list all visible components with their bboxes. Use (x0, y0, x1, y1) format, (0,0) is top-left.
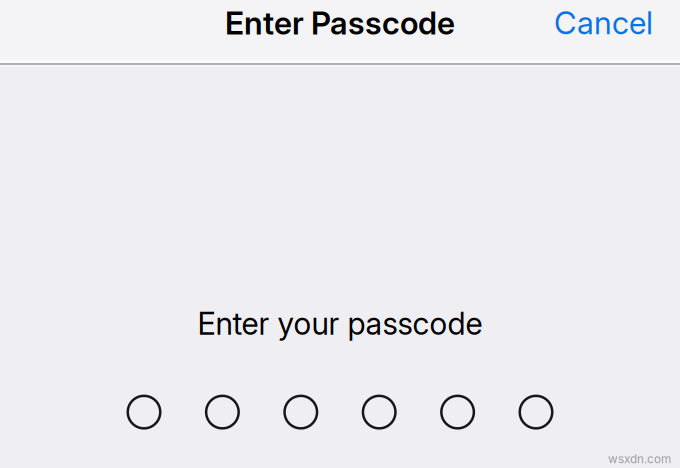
staticText: Enter your passcode (197, 305, 482, 342)
staticText: Cancel (554, 4, 653, 42)
staticText: Enter Passcode (225, 4, 455, 42)
button[interactable]: Cancel (554, 4, 680, 56)
staticText: wsxdn.com (608, 452, 671, 466)
